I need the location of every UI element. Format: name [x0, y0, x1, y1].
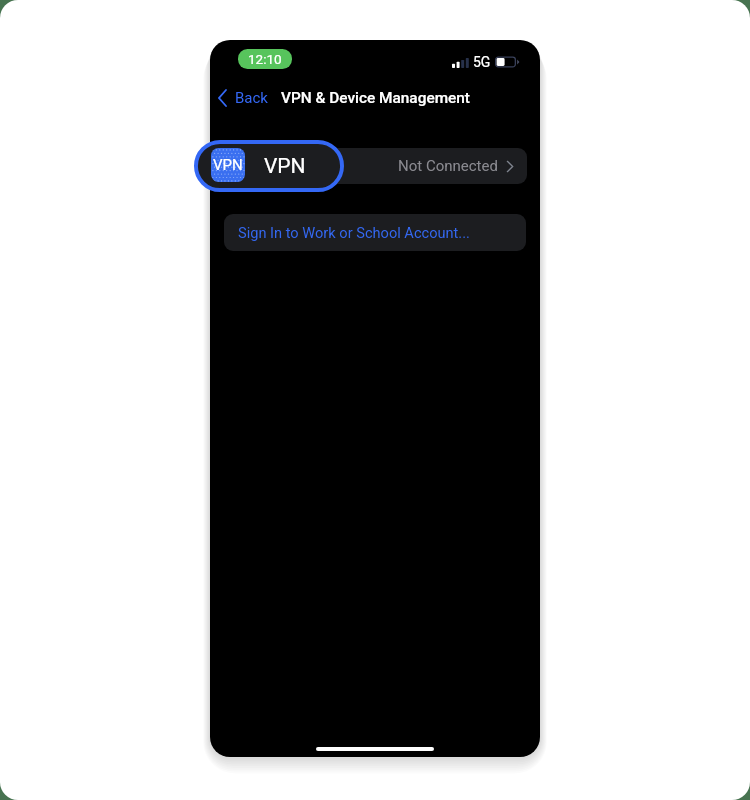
other: Cellular signal strength	[452, 58, 470, 68]
staticText: VPN & Device Management	[281, 89, 470, 107]
other: Battery	[495, 56, 520, 68]
button[interactable]: Back	[213, 85, 273, 111]
staticText: VPN	[213, 156, 243, 174]
button[interactable]: VPN	[194, 140, 344, 192]
button[interactable]: Not Connected	[224, 148, 527, 184]
staticText: Sign In to Work or School Account...	[238, 224, 470, 241]
button[interactable]: Sign In to Work or School Account...	[224, 214, 526, 251]
staticText: Back	[235, 89, 268, 107]
staticText: 5G	[473, 54, 491, 70]
staticText: 12:10	[248, 51, 282, 67]
staticText: VPN	[264, 154, 306, 179]
staticText: Not Connected	[398, 157, 498, 175]
